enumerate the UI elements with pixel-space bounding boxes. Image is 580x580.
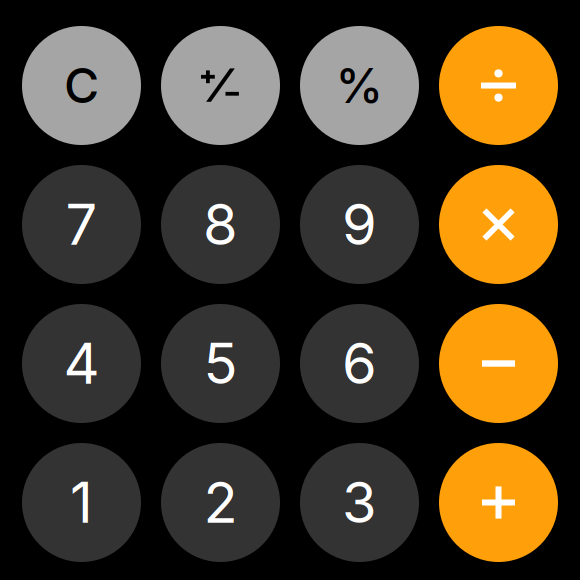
button[interactable]: 8 xyxy=(161,165,280,284)
button[interactable]: 4 xyxy=(22,304,141,423)
staticText: % xyxy=(335,56,383,115)
button[interactable]: 2 xyxy=(161,443,280,562)
staticText: 3 xyxy=(342,469,377,536)
button[interactable]: % xyxy=(300,26,419,145)
staticText: 6 xyxy=(342,330,377,397)
button[interactable]: Subtract xyxy=(439,304,558,423)
button[interactable]: 7 xyxy=(22,165,141,284)
button[interactable]: Add xyxy=(439,443,558,562)
staticText: 4 xyxy=(63,330,99,397)
button[interactable]: 9 xyxy=(300,165,419,284)
button[interactable]: 1 xyxy=(22,443,141,562)
button[interactable]: 3 xyxy=(300,443,419,562)
staticText: 7 xyxy=(65,191,97,258)
staticText: 5 xyxy=(203,330,237,397)
button[interactable]: 6 xyxy=(300,304,419,423)
button[interactable]: C xyxy=(22,26,141,145)
button[interactable]: 5 xyxy=(161,304,280,423)
staticText: 2 xyxy=(203,469,237,536)
staticText: 8 xyxy=(203,191,238,258)
button[interactable]: Divide xyxy=(439,26,558,145)
button[interactable]: Multiply xyxy=(439,165,558,284)
staticText: 1 xyxy=(70,469,93,536)
staticText: C xyxy=(64,56,99,115)
button[interactable]: Plus or minus xyxy=(161,26,280,145)
staticText: 9 xyxy=(342,191,377,258)
